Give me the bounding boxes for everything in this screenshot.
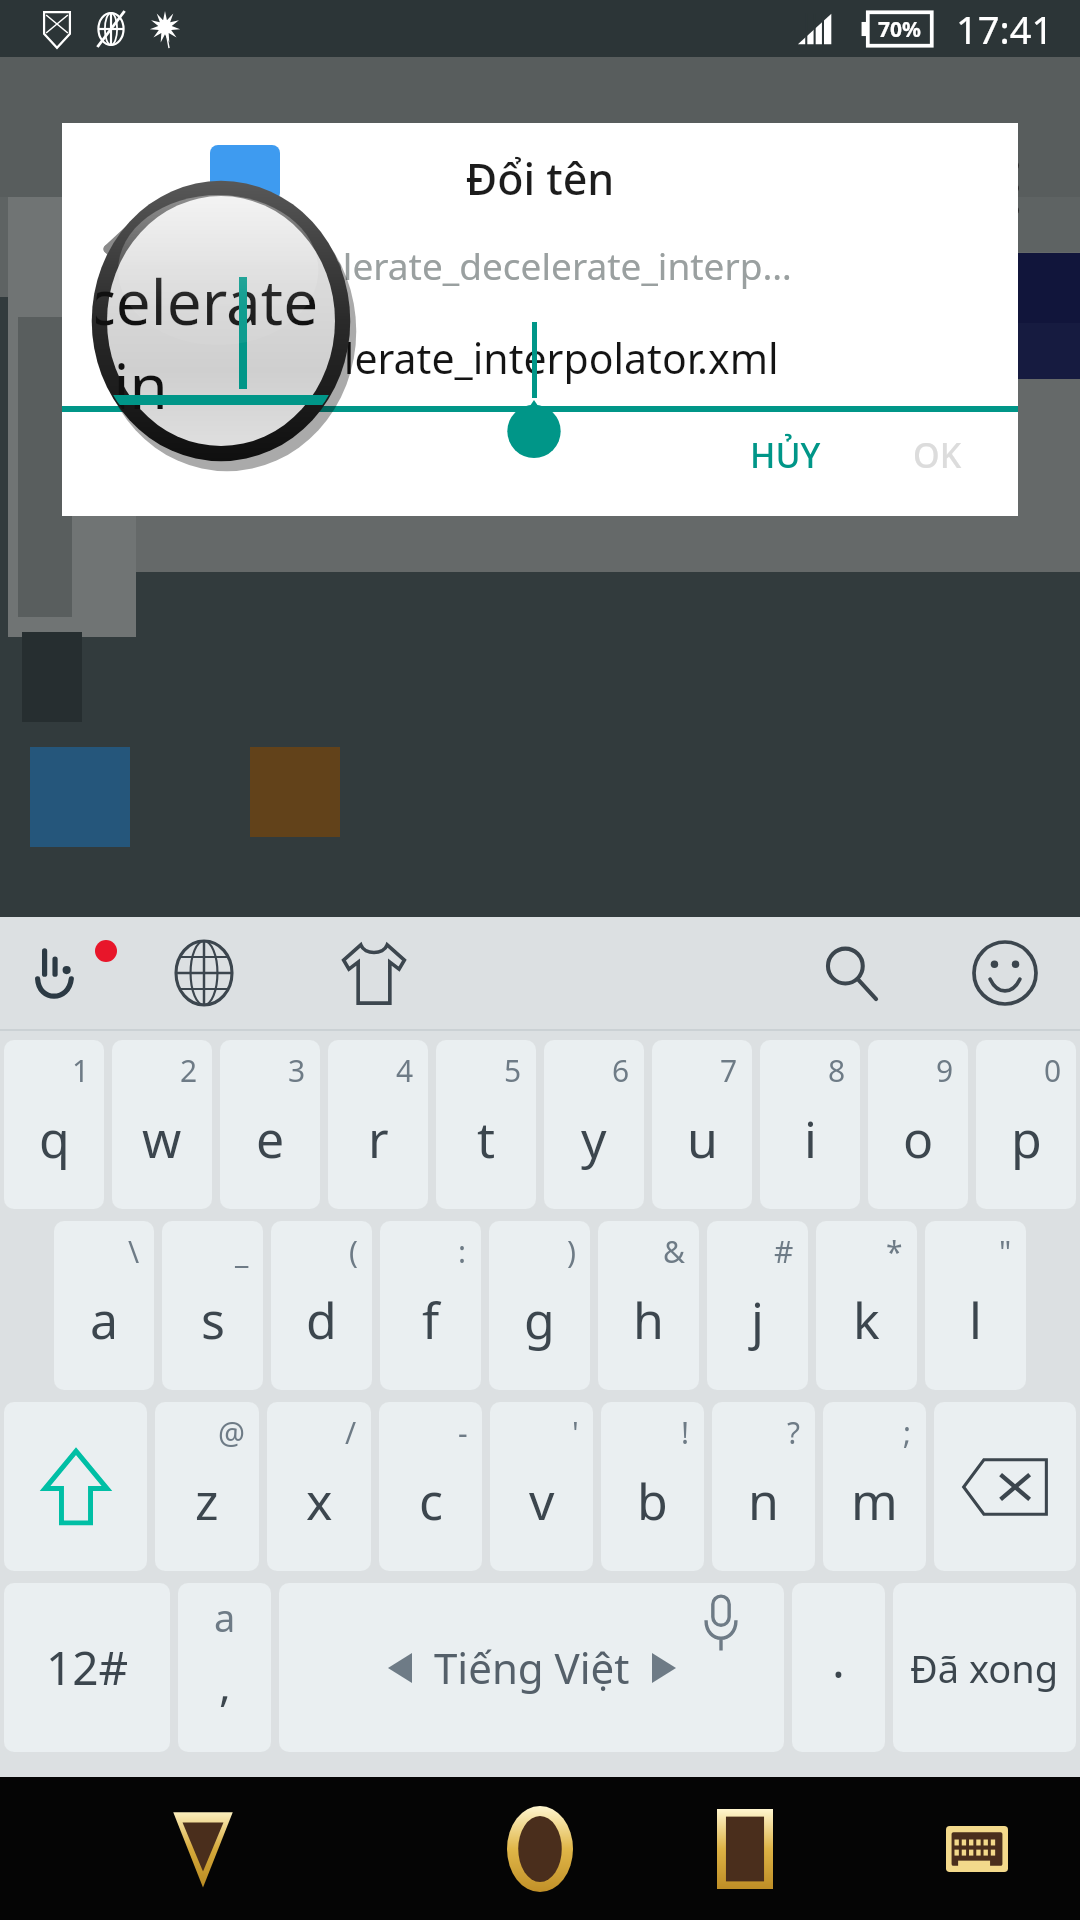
button[interactable]: 8	[760, 1040, 860, 1209]
button[interactable]: )	[489, 1221, 590, 1390]
button[interactable]: :	[380, 1221, 481, 1390]
staticText: h	[633, 1286, 664, 1354]
button[interactable]: Recents	[690, 1794, 800, 1904]
staticText: 3	[288, 1050, 306, 1091]
button[interactable]: 1	[4, 1040, 104, 1209]
staticText: g	[524, 1286, 555, 1354]
staticText: q	[39, 1105, 70, 1173]
staticText: *	[886, 1231, 903, 1272]
staticText: a	[214, 1591, 236, 1643]
button[interactable]: .	[792, 1583, 885, 1752]
staticText: k	[853, 1286, 880, 1354]
button[interactable]: 6	[544, 1040, 644, 1209]
button[interactable]: Search	[770, 917, 930, 1029]
staticText: '	[572, 1412, 579, 1453]
button[interactable]: 12#	[4, 1583, 170, 1752]
button[interactable]: *	[816, 1221, 917, 1390]
staticText: n	[748, 1467, 779, 1535]
button[interactable]: Theme	[284, 917, 464, 1029]
staticText: e	[256, 1105, 285, 1173]
button[interactable]: Tiếng Việt	[279, 1583, 784, 1752]
staticText: 2	[180, 1050, 198, 1091]
button[interactable]: a	[178, 1583, 271, 1752]
button[interactable]: 9	[868, 1040, 968, 1209]
staticText: #	[774, 1231, 794, 1272]
button[interactable]: /	[267, 1402, 371, 1571]
staticText: a	[90, 1286, 119, 1354]
button[interactable]: @	[155, 1402, 259, 1571]
staticText: .	[832, 1627, 845, 1692]
staticText: celerate_decelerate_interp…	[78, 240, 1018, 290]
staticText: )	[567, 1231, 576, 1272]
button[interactable]: -	[379, 1402, 482, 1571]
staticText: (	[349, 1231, 358, 1272]
button[interactable]: 4	[328, 1040, 428, 1209]
staticText: _	[235, 1231, 249, 1272]
button[interactable]: Home	[480, 1789, 600, 1909]
button[interactable]: 0	[976, 1040, 1076, 1209]
button[interactable]: Language	[124, 917, 284, 1029]
button[interactable]: Hide keyboard	[932, 1804, 1022, 1894]
staticText: celerate_in	[96, 259, 336, 427]
button[interactable]: Shift	[4, 1402, 147, 1571]
staticText: s	[201, 1286, 225, 1354]
button[interactable]: &	[598, 1221, 699, 1390]
staticText: v	[529, 1467, 555, 1535]
button[interactable]: Back	[148, 1794, 258, 1904]
staticText: !	[681, 1412, 690, 1453]
button[interactable]: Input method	[0, 917, 124, 1029]
button[interactable]: 5	[436, 1040, 536, 1209]
other: Back	[104, 223, 170, 275]
button[interactable]: 3	[220, 1040, 320, 1209]
staticText: x	[306, 1467, 333, 1535]
staticText: l	[969, 1286, 982, 1354]
staticText: u	[687, 1105, 718, 1173]
staticText: ,	[219, 1654, 231, 1714]
staticText: Đã xong	[910, 1642, 1059, 1694]
staticText: \	[128, 1231, 140, 1272]
staticText: @	[218, 1412, 245, 1453]
staticText: celerate_interpolator.xml	[301, 330, 779, 386]
staticText: 12#	[46, 1636, 129, 1699]
staticText: HỦY	[750, 432, 821, 478]
staticText: OK	[913, 432, 962, 478]
button[interactable]: HỦY	[728, 418, 843, 492]
staticText: m	[851, 1467, 898, 1535]
staticText: 17:41	[956, 3, 1054, 55]
staticText: 5	[504, 1050, 522, 1091]
staticText: j	[751, 1286, 764, 1354]
button[interactable]: \	[54, 1221, 154, 1390]
button[interactable]: _	[162, 1221, 263, 1390]
staticText: 4	[396, 1050, 414, 1091]
button[interactable]: ?	[712, 1402, 815, 1571]
button[interactable]: OK	[891, 418, 984, 492]
staticText: p	[1011, 1105, 1042, 1173]
staticText: ?	[787, 1412, 801, 1453]
staticText: c	[419, 1467, 443, 1535]
staticText: /	[345, 1412, 357, 1453]
staticText: -	[458, 1412, 468, 1453]
button[interactable]: "	[925, 1221, 1026, 1390]
button[interactable]: ;	[823, 1402, 926, 1571]
staticText: Tiếng Việt	[434, 1639, 630, 1696]
button[interactable]: #	[707, 1221, 808, 1390]
button[interactable]: !	[601, 1402, 704, 1571]
button[interactable]: Emoji	[930, 917, 1080, 1029]
staticText: 8	[828, 1050, 846, 1091]
staticText: "	[999, 1231, 1012, 1272]
staticText: 0	[1044, 1050, 1062, 1091]
button[interactable]: 2	[112, 1040, 212, 1209]
button[interactable]: Backspace	[934, 1402, 1076, 1571]
button[interactable]: (	[271, 1221, 372, 1390]
staticText: t	[477, 1105, 496, 1173]
button[interactable]: 7	[652, 1040, 752, 1209]
button[interactable]: '	[490, 1402, 593, 1571]
staticText: f	[422, 1286, 440, 1354]
staticText: w	[142, 1105, 182, 1173]
staticText: 1	[72, 1050, 90, 1091]
staticText: 70%	[878, 15, 921, 44]
button[interactable]: Đã xong	[893, 1583, 1076, 1752]
staticText: r	[368, 1105, 389, 1173]
staticText: i	[804, 1105, 817, 1173]
staticText: 9	[936, 1050, 954, 1091]
